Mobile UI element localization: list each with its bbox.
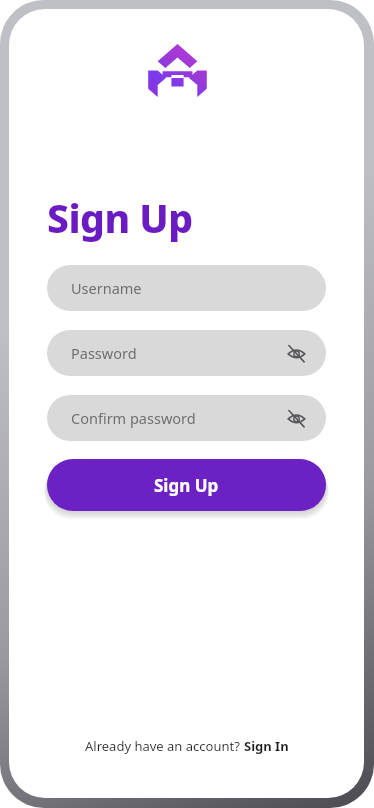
button[interactable]: Sign Up	[47, 459, 326, 511]
staticText: Already have an account?	[85, 737, 244, 755]
button[interactable]: Show password	[284, 341, 308, 365]
staticText: Confirm password	[71, 408, 196, 428]
button[interactable]: Confirm password	[47, 395, 326, 441]
staticText: Username	[71, 278, 142, 298]
staticText: Password	[71, 343, 137, 363]
staticText: Sign In	[244, 737, 289, 755]
button[interactable]: Show password	[284, 406, 308, 430]
button[interactable]: Sign In	[244, 737, 289, 755]
button[interactable]: Password	[47, 330, 326, 376]
staticText: Sign Up	[154, 474, 219, 497]
staticText: Sign Up	[47, 191, 193, 244]
button[interactable]: Username	[47, 265, 326, 311]
